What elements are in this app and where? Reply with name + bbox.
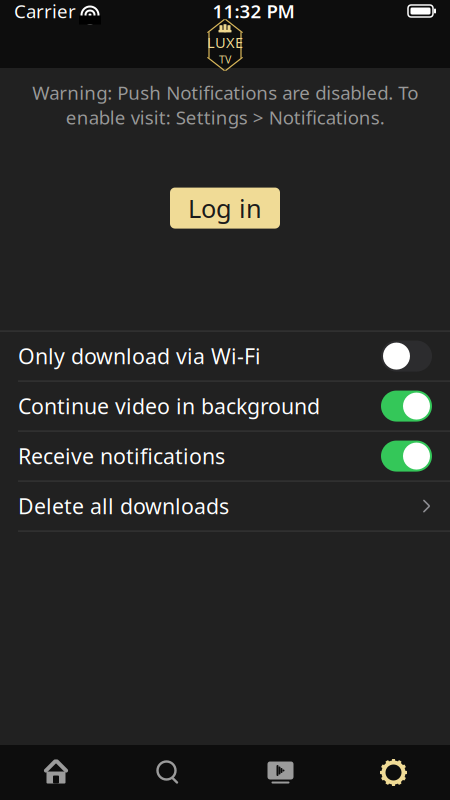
- staticText: Only download via Wi-Fi: [18, 342, 261, 370]
- button[interactable]: Live TV: [224, 745, 337, 800]
- staticText: LUXE: [207, 33, 243, 52]
- staticText: Continue video in background: [18, 392, 320, 420]
- staticText: Receive notifications: [18, 442, 225, 470]
- button[interactable]: Only download via Wi-Fi: [0, 332, 450, 381]
- staticText: Delete all downloads: [18, 492, 229, 520]
- button[interactable]: Luxe TV home: [199, 22, 251, 68]
- button[interactable]: Continue video in background: [0, 382, 450, 431]
- staticText: Log in: [188, 191, 262, 225]
- staticText: TV: [219, 52, 231, 66]
- staticText: Carrier: [14, 0, 76, 23]
- button[interactable]: Delete all downloads: [0, 482, 450, 531]
- button[interactable]: Settings: [337, 745, 450, 800]
- button[interactable]: Log in: [170, 188, 280, 229]
- button[interactable]: Home: [0, 745, 112, 800]
- staticText: Warning: Push Notifications are disabled…: [32, 80, 418, 130]
- button[interactable]: Search: [112, 745, 224, 800]
- button[interactable]: Receive notifications: [0, 432, 450, 481]
- staticText: 11:32 PM: [212, 0, 294, 23]
